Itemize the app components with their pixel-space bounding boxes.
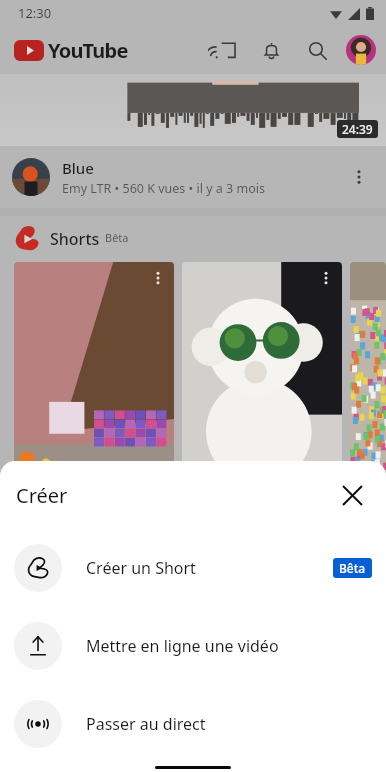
staticText: Bêta [105,230,129,245]
button[interactable]: Notifications [254,33,288,67]
button[interactable]: Plus d'options [344,162,374,192]
button[interactable]: Plus d'options [14,262,174,474]
button[interactable]: Compte [346,35,376,65]
button[interactable]: Créer un Short [0,529,386,607]
button[interactable]: Rechercher [300,33,334,67]
button[interactable]: Plus d'options [146,266,170,290]
staticText: Emy LTR • 560 K vues • il y a 3 mois [62,180,265,197]
staticText: 24:39 [342,121,373,137]
button[interactable]: Blue [0,146,386,208]
button[interactable] [350,262,386,474]
button[interactable]: Plus d'options [314,266,338,290]
staticText: Mettre en ligne une vidéo [86,635,279,657]
button[interactable]: Plus d'options [182,262,342,474]
staticText: Shorts [50,228,100,250]
staticText: YouTube [48,37,128,64]
staticText: Créer un Short [86,557,196,579]
button[interactable]: Passer au direct [0,685,386,763]
staticText: 12:30 [18,4,52,22]
button[interactable]: Caster [208,33,242,67]
staticText: Créer [16,482,68,509]
staticText: Bêta [339,560,366,576]
staticText: Passer au direct [86,713,206,735]
button[interactable]: Mettre en ligne une vidéo [0,607,386,685]
staticText: Blue [62,158,94,178]
button[interactable]: Fermer [330,473,374,517]
